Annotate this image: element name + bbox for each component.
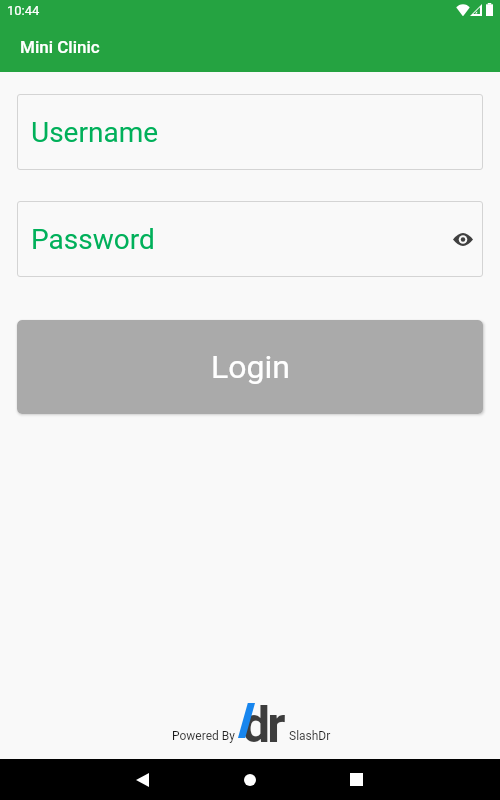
staticText: SlashDr: [289, 729, 331, 743]
staticText: Powered By: [172, 729, 235, 743]
staticText: Mini Clinic: [20, 37, 100, 57]
button[interactable]: Password: [17, 201, 483, 277]
staticText: Password: [31, 223, 155, 256]
staticText: Login: [211, 348, 290, 386]
button[interactable]: Home: [227, 759, 273, 800]
button[interactable]: Login: [17, 320, 483, 414]
staticText: Username: [31, 116, 159, 149]
button[interactable]: Show password: [449, 225, 477, 253]
button[interactable]: Username: [17, 94, 483, 170]
staticText: 10:44: [7, 3, 40, 18]
staticText: dr: [242, 696, 283, 755]
button[interactable]: Back: [119, 759, 165, 800]
button[interactable]: Recent apps: [333, 759, 379, 800]
